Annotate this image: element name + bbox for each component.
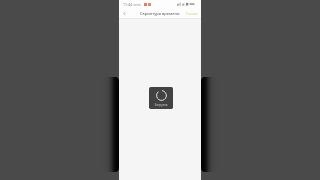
button[interactable]: Back — [119, 8, 130, 18]
staticText: 11:44 — [123, 2, 132, 7]
staticText: Скриптура времени — [140, 11, 180, 16]
staticText: Готово — [186, 11, 198, 16]
button[interactable]: Готово — [183, 8, 201, 18]
staticText: четв. — [133, 2, 142, 7]
staticText: Загрузка — [154, 103, 168, 107]
